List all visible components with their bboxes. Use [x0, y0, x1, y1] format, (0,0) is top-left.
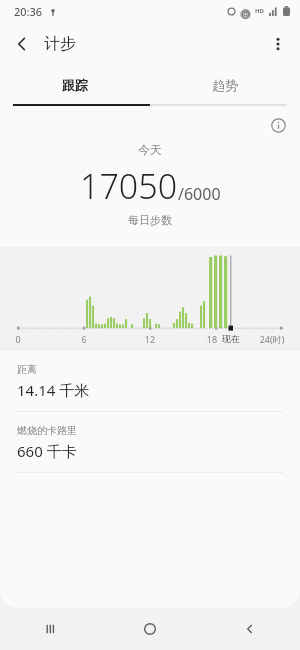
staticText: 0	[4, 333, 32, 345]
button[interactable]: Information	[266, 113, 290, 137]
staticText: 24(时)	[258, 333, 286, 345]
staticText: 660 千卡	[17, 441, 77, 461]
staticText: 14.14 千米	[17, 380, 90, 400]
button[interactable]: 趋势	[150, 66, 300, 104]
staticText: 现在	[217, 333, 245, 344]
staticText: 计步	[44, 34, 76, 54]
staticText: 20:36	[14, 4, 43, 19]
button[interactable]: More options	[256, 22, 300, 66]
staticText: /6000	[178, 183, 221, 205]
staticText: 6	[70, 333, 98, 345]
button[interactable]: 燃烧的卡路里	[0, 412, 300, 472]
staticText: 趋势	[212, 77, 238, 93]
staticText: 距离	[17, 363, 37, 376]
button[interactable]: Home	[100, 608, 200, 650]
button[interactable]: Recent apps	[0, 608, 100, 650]
staticText: 跟踪	[62, 77, 88, 93]
button[interactable]: 跟踪	[0, 66, 150, 104]
staticText: 18	[198, 333, 226, 345]
button[interactable]: Back	[200, 608, 300, 650]
button[interactable]: Back	[0, 22, 44, 66]
staticText: 12	[136, 333, 164, 345]
staticText: 17050	[80, 163, 178, 209]
staticText: 燃烧的卡路里	[17, 424, 77, 437]
staticText: HD	[255, 7, 264, 15]
staticText: 今天	[138, 142, 162, 157]
button[interactable]: 距离	[0, 351, 300, 411]
staticText: 每日步数	[128, 213, 172, 227]
